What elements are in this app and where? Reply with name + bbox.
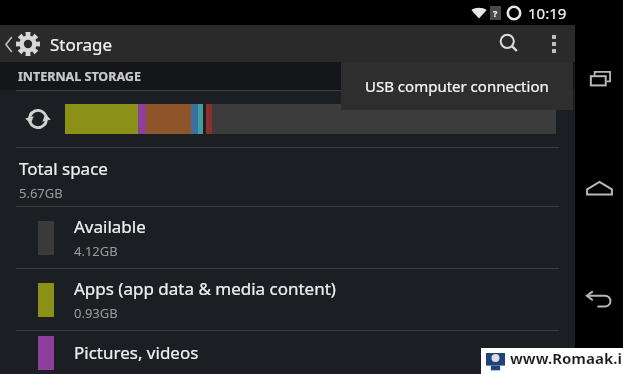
staticText: Storage <box>50 33 113 56</box>
staticText: 0.93GB <box>74 304 118 322</box>
staticText: Total space <box>19 157 108 180</box>
button[interactable]: Search <box>485 25 533 62</box>
staticText: 10:19 <box>528 3 567 23</box>
button[interactable]: Apps (app data & media content) <box>0 269 575 330</box>
button[interactable]: Home <box>575 165 623 213</box>
staticText: 4.12GB <box>74 242 118 260</box>
staticText: 5.67GB <box>19 184 63 202</box>
staticText: INTERNAL STORAGE <box>18 68 141 85</box>
button[interactable]: Pictures, videos <box>0 331 575 374</box>
button[interactable]: Total space <box>0 148 575 206</box>
staticText: Pictures, videos <box>74 341 199 364</box>
staticText: ? <box>493 7 498 19</box>
staticText: USB computer connection <box>365 76 549 96</box>
button[interactable]: Navigate up, Storage <box>0 31 121 57</box>
other: Refresh <box>25 106 51 132</box>
staticText: Apps (app data & media content) <box>74 277 336 300</box>
button[interactable]: USB computer connection <box>341 62 573 110</box>
button[interactable]: More options <box>533 25 575 62</box>
staticText: www.Romaak.ir <box>510 348 623 374</box>
button[interactable]: Back <box>575 275 623 323</box>
button[interactable]: Available <box>0 207 575 268</box>
button[interactable]: Refresh <box>0 91 575 147</box>
button[interactable]: Recent apps <box>575 55 623 103</box>
staticText: Available <box>74 215 146 238</box>
